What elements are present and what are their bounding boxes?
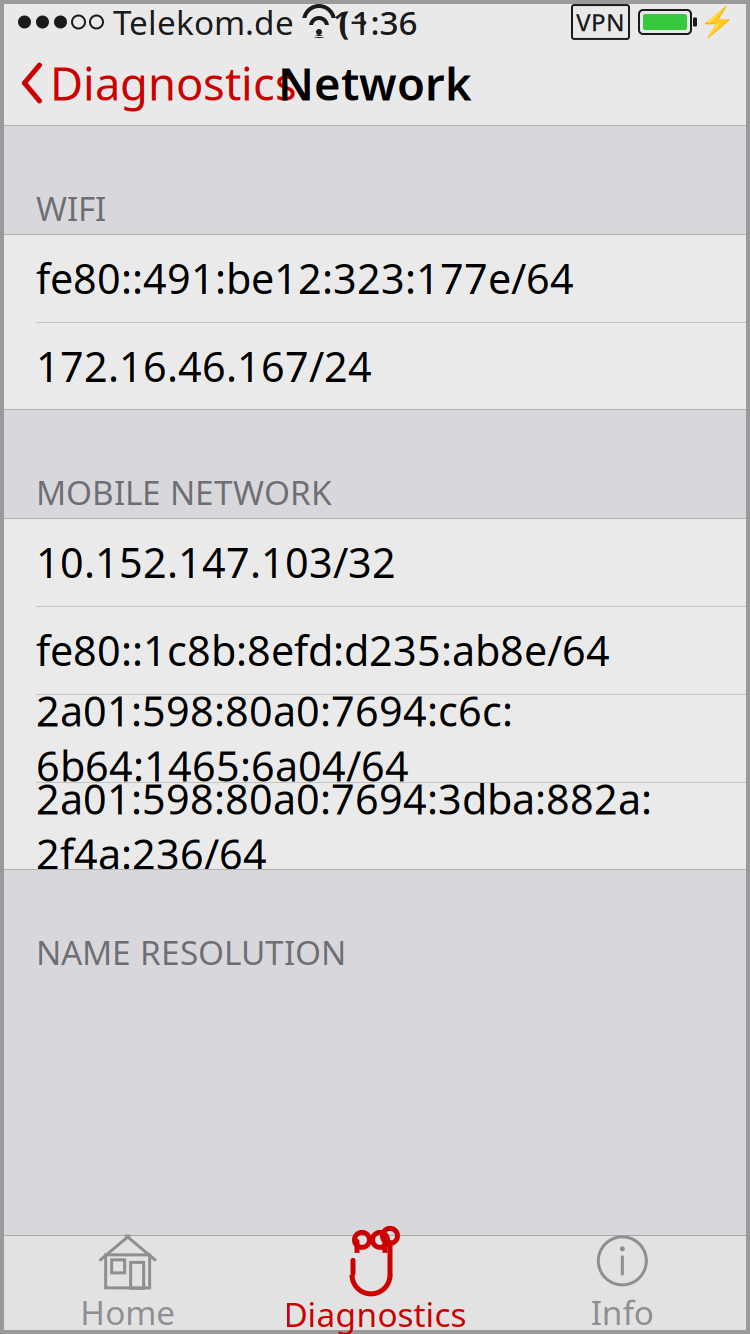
staticText: VPN <box>576 6 625 38</box>
button[interactable]: Diagnostics <box>4 45 297 121</box>
button[interactable]: 2a01:598:80a0:7694:c6c:6b64:1465:6a04/64 <box>4 694 746 782</box>
staticText: 11:36 <box>332 0 417 44</box>
staticText: Network <box>278 53 472 113</box>
staticText: fe80::1c8b:8efd:d235:ab8e/64 <box>36 623 610 677</box>
staticText: fe80::491:be12:323:177e/64 <box>36 251 574 305</box>
staticText: ⚡ <box>699 5 736 39</box>
button[interactable]: Home <box>4 1228 251 1334</box>
button[interactable]: 2a01:598:80a0:7694:3dba:882a:2f4a:236/64 <box>4 782 746 870</box>
button[interactable]: 10.152.147.103/32 <box>4 518 746 606</box>
staticText: WIFI <box>36 186 106 230</box>
staticText: Diagnostics <box>283 1292 466 1334</box>
staticText: MOBILE NETWORK <box>36 470 332 514</box>
button[interactable]: fe80::1c8b:8efd:d235:ab8e/64 <box>4 606 746 694</box>
staticText: 2a01:598:80a0:7694:c6c:6b64:1465:6a04/64 <box>36 683 513 793</box>
staticText: Home <box>80 1290 175 1334</box>
staticText: Diagnostics <box>50 53 297 113</box>
staticText: 2a01:598:80a0:7694:3dba:882a:2f4a:236/64 <box>36 771 652 881</box>
button[interactable]: 172.16.46.167/24 <box>4 322 746 410</box>
staticText: ( <box>338 1 349 43</box>
staticText: Info <box>591 1290 654 1334</box>
button[interactable]: fe80::491:be12:323:177e/64 <box>4 234 746 322</box>
button[interactable]: Diagnostics <box>251 1226 499 1334</box>
button[interactable]: Info <box>499 1228 746 1334</box>
staticText: → <box>350 11 367 33</box>
staticText: 10.152.147.103/32 <box>36 535 396 589</box>
staticText: NAME RESOLUTION <box>36 930 346 974</box>
staticText: 172.16.46.167/24 <box>36 339 372 393</box>
staticText: Telekom.de <box>113 0 294 44</box>
